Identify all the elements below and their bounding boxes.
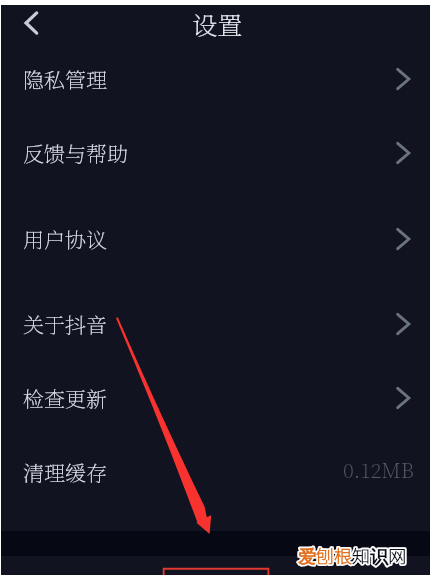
button[interactable]: Back bbox=[13, 5, 49, 41]
staticText: 清理缓存 bbox=[23, 457, 107, 487]
staticText: 关于抖音 bbox=[23, 309, 107, 339]
staticText: 爱刨根知识网 bbox=[298, 542, 406, 568]
staticText: 爱刨根知识网 bbox=[298, 542, 406, 568]
staticText: 设置 bbox=[192, 6, 243, 40]
button[interactable]: 反馈与帮助 bbox=[1, 125, 430, 181]
staticText: 反馈与帮助 bbox=[23, 138, 128, 168]
button[interactable]: 清理缓存 bbox=[1, 444, 430, 500]
button[interactable]: 检查更新 bbox=[1, 370, 430, 426]
staticText: 0.12MB bbox=[343, 455, 414, 484]
staticText: 隐私管理 bbox=[23, 64, 107, 94]
button[interactable]: 关于抖音 bbox=[1, 296, 430, 352]
button[interactable]: 用户协议 bbox=[1, 211, 430, 267]
staticText: 用户协议 bbox=[23, 224, 107, 254]
button[interactable]: 隐私管理 bbox=[1, 51, 430, 107]
staticText: 检查更新 bbox=[23, 383, 107, 413]
